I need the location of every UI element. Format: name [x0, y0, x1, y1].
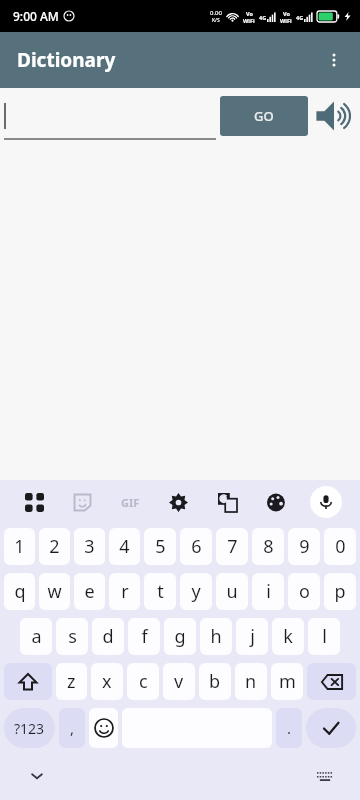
staticText: d — [102, 624, 114, 649]
staticText: Vo — [283, 10, 290, 17]
button[interactable]: z — [56, 663, 87, 700]
staticText: 1 — [14, 534, 25, 559]
button[interactable]: . — [276, 708, 302, 748]
button[interactable]: w — [39, 573, 70, 610]
staticText: 8 — [263, 534, 274, 559]
staticText: WiFi — [280, 17, 292, 24]
button[interactable]: Apps — [10, 480, 58, 524]
staticText: Dictionary — [17, 47, 116, 73]
button[interactable]: t — [144, 573, 176, 610]
button[interactable]: p — [324, 573, 356, 610]
staticText: i — [266, 579, 271, 604]
button[interactable]: Themes — [252, 480, 301, 524]
staticText: . — [287, 718, 292, 738]
staticText: GO — [254, 107, 274, 125]
button[interactable]: q — [4, 573, 35, 610]
button[interactable]: 0 — [324, 528, 356, 565]
staticText: r — [121, 579, 129, 604]
button[interactable]: Shift — [4, 663, 52, 700]
staticText: q — [14, 579, 26, 604]
button[interactable]: m — [271, 663, 303, 700]
staticText: K/S — [212, 17, 220, 24]
button[interactable]: Translate — [203, 480, 252, 524]
staticText: e — [84, 579, 95, 604]
button[interactable]: n — [235, 663, 267, 700]
button[interactable]: f — [128, 618, 160, 655]
staticText: s — [68, 624, 77, 649]
button[interactable]: x — [91, 663, 123, 700]
staticText: a — [31, 624, 42, 649]
button[interactable]: ?123 — [4, 708, 55, 748]
button[interactable]: Emoji — [89, 708, 118, 748]
button[interactable]: c — [127, 663, 159, 700]
button[interactable]: 5 — [144, 528, 176, 565]
button[interactable]: Settings — [154, 480, 203, 524]
staticText: ?123 — [14, 719, 45, 738]
button[interactable]: 9 — [288, 528, 320, 565]
staticText: z — [67, 669, 76, 694]
button[interactable]: s — [56, 618, 88, 655]
button[interactable]: Change keyboard — [308, 759, 342, 793]
staticText: Vo — [246, 10, 253, 17]
staticText: w — [47, 579, 62, 604]
button[interactable]: d — [92, 618, 124, 655]
button[interactable]: e — [74, 573, 105, 610]
button[interactable]: 7 — [216, 528, 248, 565]
button[interactable]: More options — [312, 38, 356, 82]
staticText: 2 — [49, 534, 60, 559]
staticText: m — [279, 669, 296, 694]
staticText: n — [245, 669, 257, 694]
staticText: v — [174, 669, 184, 694]
button[interactable]: GO — [220, 96, 308, 136]
staticText: k — [283, 624, 293, 649]
staticText: 4G — [259, 14, 267, 21]
staticText: 4G — [296, 14, 304, 21]
button[interactable]: Enter — [306, 708, 356, 748]
staticText: x — [102, 669, 112, 694]
button[interactable]: , — [59, 708, 85, 748]
button[interactable]: Stickers — [58, 480, 106, 524]
staticText: 5 — [155, 534, 166, 559]
staticText: WiFi — [243, 17, 255, 24]
button[interactable]: u — [216, 573, 248, 610]
staticText: p — [334, 579, 346, 604]
staticText: 3 — [84, 534, 95, 559]
button[interactable]: 3 — [74, 528, 105, 565]
button[interactable]: l — [308, 618, 340, 655]
staticText: 0.00 — [210, 9, 222, 17]
staticText: h — [210, 624, 222, 649]
button[interactable]: y — [180, 573, 212, 610]
staticText: o — [299, 579, 310, 604]
button[interactable]: k — [272, 618, 304, 655]
staticText: 9:00 AM — [13, 8, 59, 24]
button[interactable]: Backspace — [307, 663, 356, 700]
button[interactable]: a — [20, 618, 52, 655]
staticText: t — [157, 579, 164, 604]
button[interactable]: i — [252, 573, 284, 610]
button[interactable]: 4 — [109, 528, 140, 565]
button[interactable]: 2 — [39, 528, 70, 565]
staticText: g — [174, 624, 186, 649]
button[interactable]: 8 — [252, 528, 284, 565]
button[interactable]: Hide keyboard — [20, 759, 54, 793]
staticText: j — [250, 624, 255, 649]
button[interactable]: 6 — [180, 528, 212, 565]
button[interactable]: GIF — [106, 480, 154, 524]
button[interactable]: Speak — [310, 92, 358, 140]
button[interactable]: g — [164, 618, 196, 655]
button[interactable]: o — [288, 573, 320, 610]
staticText: 9 — [299, 534, 310, 559]
button[interactable]: h — [200, 618, 232, 655]
staticText: 0 — [335, 534, 346, 559]
staticText: c — [139, 669, 148, 694]
button[interactable]: Voice input — [301, 480, 350, 524]
button[interactable]: j — [236, 618, 268, 655]
staticText: , — [70, 718, 75, 738]
staticText: b — [209, 669, 221, 694]
button[interactable]: b — [199, 663, 231, 700]
button[interactable]: 1 — [4, 528, 35, 565]
button[interactable]: v — [163, 663, 195, 700]
button[interactable] — [4, 92, 216, 140]
button[interactable]: r — [109, 573, 140, 610]
